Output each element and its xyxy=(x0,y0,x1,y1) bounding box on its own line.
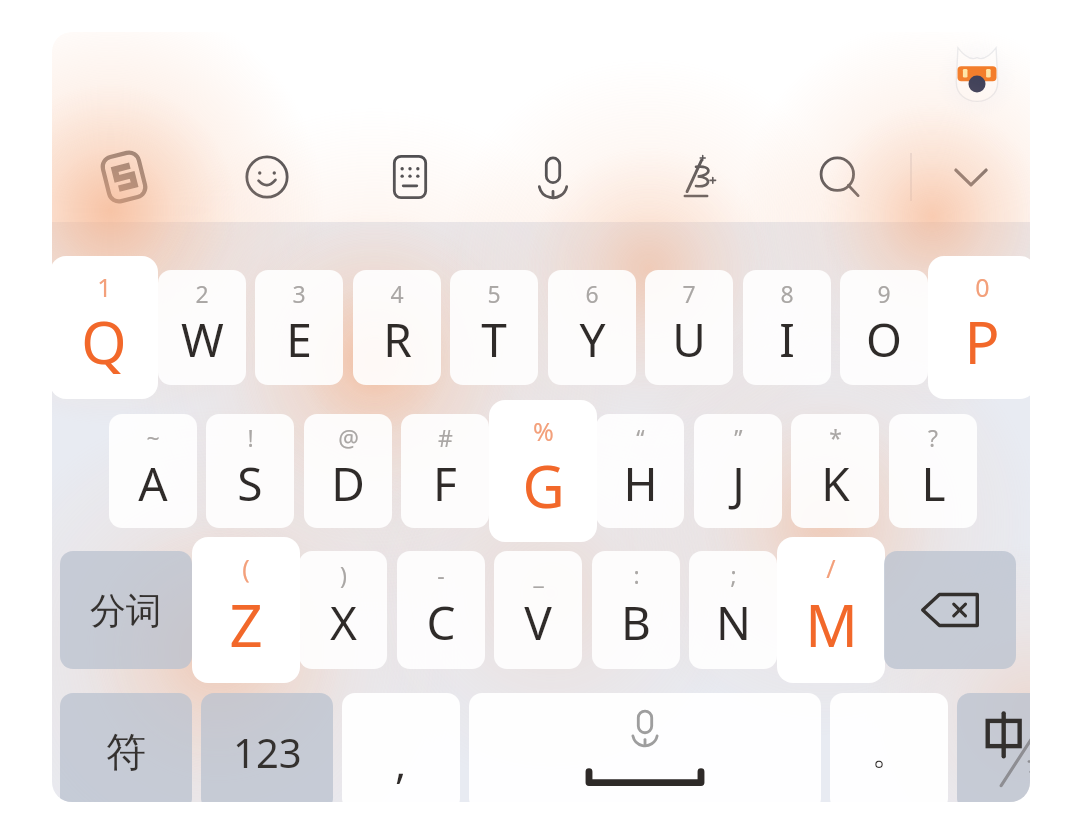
button[interactable]: Symbols xyxy=(60,693,192,802)
staticText: N xyxy=(716,591,751,654)
button[interactable]: 0 xyxy=(928,256,1030,399)
button[interactable]: * xyxy=(791,414,879,528)
button[interactable]: ( xyxy=(192,537,300,683)
button[interactable]: - xyxy=(397,551,485,669)
staticText: V xyxy=(524,591,552,654)
button[interactable]: Handwriting xyxy=(624,129,767,225)
staticText: Q xyxy=(81,302,127,381)
staticText: * xyxy=(829,422,842,453)
staticText: D xyxy=(331,452,365,515)
button[interactable]: Search xyxy=(767,129,910,225)
button[interactable]: Period xyxy=(830,693,948,802)
button[interactable]: Numbers xyxy=(201,693,333,802)
staticText: J xyxy=(732,452,745,515)
button[interactable]: / xyxy=(777,537,885,683)
staticText: K xyxy=(821,452,850,515)
button[interactable]: ) xyxy=(299,551,387,669)
staticText: ” xyxy=(734,422,743,453)
staticText: U xyxy=(672,308,706,371)
button[interactable]: ~ xyxy=(109,414,197,528)
button[interactable]: ” xyxy=(694,414,782,528)
staticText: 5 xyxy=(487,278,501,309)
staticText: “ xyxy=(636,422,645,453)
button[interactable]: 1 xyxy=(52,256,158,399)
button[interactable]: % xyxy=(489,400,597,542)
staticText: 9 xyxy=(877,278,891,309)
staticText: 8 xyxy=(780,278,794,309)
button[interactable]: ! xyxy=(206,414,294,528)
staticText: 。 xyxy=(872,731,906,774)
staticText: _ xyxy=(533,559,544,590)
button[interactable]: _ xyxy=(494,551,582,669)
button[interactable]: Assistant avatar xyxy=(940,42,1014,116)
staticText: 7 xyxy=(682,278,696,309)
button[interactable]: 6 xyxy=(548,270,636,385)
staticText: Z xyxy=(229,585,263,664)
button[interactable]: 7 xyxy=(645,270,733,385)
staticText: A xyxy=(138,452,168,515)
button[interactable]: 4 xyxy=(353,270,441,385)
staticText: / xyxy=(826,551,836,585)
staticText: @ xyxy=(338,422,359,453)
button[interactable]: # xyxy=(401,414,489,528)
staticText: 6 xyxy=(585,278,599,309)
button[interactable]: “ xyxy=(596,414,684,528)
button[interactable]: 5 xyxy=(450,270,538,385)
button[interactable]: ? xyxy=(889,414,977,528)
staticText: E xyxy=(286,308,312,371)
button[interactable]: Keyboard layout xyxy=(338,129,481,225)
button[interactable]: Voice input xyxy=(481,129,624,225)
button[interactable]: Word segmentation xyxy=(60,551,192,669)
staticText: ; xyxy=(730,559,737,590)
staticText: ! xyxy=(247,422,254,453)
staticText: Y xyxy=(579,308,606,371)
button[interactable]: Comma xyxy=(342,693,460,802)
button[interactable]: Space xyxy=(469,693,821,802)
staticText: ~ xyxy=(146,422,160,453)
button[interactable]: Chinese English toggle xyxy=(957,693,1030,802)
staticText: T xyxy=(481,308,507,371)
staticText: 1 xyxy=(97,270,112,304)
staticText: 符 xyxy=(106,727,146,777)
staticText: ? xyxy=(928,422,938,453)
staticText: 4 xyxy=(390,278,404,309)
button[interactable]: Hide keyboard xyxy=(912,129,1030,225)
staticText: - xyxy=(437,559,445,590)
staticText: L xyxy=(921,452,946,515)
staticText: % xyxy=(533,414,554,448)
staticText: B xyxy=(621,591,651,654)
staticText: : xyxy=(633,559,640,590)
button[interactable]: 9 xyxy=(840,270,928,385)
staticText: G xyxy=(522,446,565,525)
staticText: # xyxy=(438,422,453,453)
button[interactable]: 8 xyxy=(743,270,831,385)
button[interactable]: 2 xyxy=(158,270,246,385)
staticText: R xyxy=(383,308,412,371)
staticText: 3 xyxy=(292,278,306,309)
button[interactable]: Sogou xyxy=(52,129,195,225)
button[interactable]: ; xyxy=(689,551,777,669)
button[interactable]: Backspace xyxy=(884,551,1016,669)
staticText: S xyxy=(237,452,263,515)
staticText: , xyxy=(395,734,407,791)
staticText: X xyxy=(330,591,357,654)
staticText: C xyxy=(426,591,456,654)
staticText: P xyxy=(964,302,1000,381)
staticText: M xyxy=(805,585,858,664)
staticText: ( xyxy=(242,551,250,585)
button[interactable]: @ xyxy=(304,414,392,528)
staticText: I xyxy=(779,308,795,371)
button[interactable]: Emoji xyxy=(195,129,338,225)
staticText: 分词 xyxy=(90,588,162,633)
staticText: F xyxy=(433,452,457,515)
staticText: W xyxy=(181,308,224,371)
staticText: O xyxy=(866,308,902,371)
staticText: 123 xyxy=(233,725,302,779)
button[interactable]: : xyxy=(592,551,680,669)
staticText: 0 xyxy=(975,270,990,304)
staticText: H xyxy=(623,452,658,515)
staticText: ) xyxy=(340,559,347,590)
staticText: 2 xyxy=(195,278,209,309)
button[interactable]: 3 xyxy=(255,270,343,385)
